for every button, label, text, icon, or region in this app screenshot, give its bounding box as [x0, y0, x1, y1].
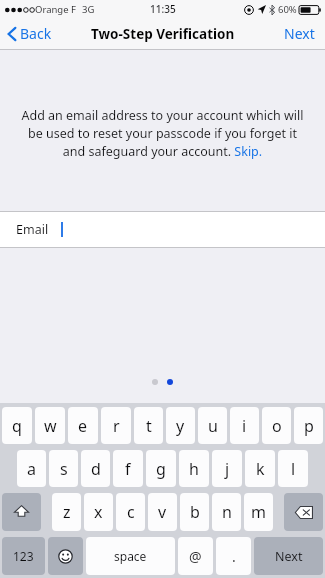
button[interactable]: Back [0, 20, 60, 47]
button[interactable]: y [166, 407, 195, 444]
button[interactable]: d [81, 450, 110, 487]
button[interactable]: . [216, 537, 251, 575]
staticText: e [78, 415, 88, 437]
button[interactable]: a [17, 450, 46, 487]
button[interactable]: x [84, 493, 113, 531]
button[interactable]: v [148, 493, 177, 531]
staticText: r [113, 415, 120, 437]
button[interactable]: g [146, 450, 176, 487]
button[interactable]: b [180, 493, 209, 531]
staticText: q [12, 415, 22, 437]
staticText: j [225, 458, 230, 480]
staticText: Orange F [35, 3, 76, 16]
staticText: u [208, 415, 218, 437]
button[interactable]: f [113, 450, 143, 487]
staticText: Add an email address to your account whi… [18, 107, 307, 160]
staticText: t [146, 415, 152, 437]
button[interactable]: Next [254, 537, 323, 575]
staticText: Two-Step Verification [91, 25, 235, 43]
staticText: a [27, 458, 36, 480]
staticText: b [190, 501, 200, 523]
staticText: w [44, 415, 57, 437]
staticText: f [125, 458, 131, 480]
button[interactable]: r [101, 407, 131, 444]
button[interactable]: Emoji [48, 537, 83, 575]
button[interactable]: t [134, 407, 163, 444]
button[interactable]: u [198, 407, 227, 444]
staticText: k [256, 458, 265, 480]
staticText: 11:35 [150, 2, 176, 16]
button[interactable]: Shift [2, 493, 41, 531]
button[interactable]: i [230, 407, 259, 444]
button[interactable]: s [49, 450, 78, 487]
staticText: n [222, 501, 232, 523]
staticText: 60% [278, 3, 297, 16]
button[interactable]: o [262, 407, 291, 444]
button[interactable]: m [244, 493, 273, 531]
staticText: z [63, 501, 71, 523]
staticText: c [127, 501, 135, 523]
staticText: x [94, 501, 103, 523]
button[interactable]: h [179, 450, 209, 487]
staticText: y [176, 415, 185, 437]
button[interactable]: n [212, 493, 241, 531]
staticText: p [304, 415, 314, 437]
staticText: Email [16, 221, 49, 238]
staticText: m [251, 501, 266, 523]
staticText: Next [284, 24, 315, 43]
button[interactable]: l [278, 450, 308, 487]
staticText: @ [189, 547, 202, 566]
staticText: o [272, 415, 282, 437]
button[interactable]: c [116, 493, 145, 531]
button[interactable]: Delete [284, 493, 323, 531]
staticText: s [60, 458, 68, 480]
button[interactable]: w [35, 407, 65, 444]
button[interactable]: z [52, 493, 81, 531]
staticText: i [242, 415, 247, 437]
staticText: d [91, 458, 101, 480]
button[interactable]: j [212, 450, 242, 487]
button[interactable]: p [294, 407, 323, 444]
button[interactable]: Email [0, 212, 325, 247]
staticText: h [189, 458, 199, 480]
button[interactable]: 123 [2, 537, 45, 575]
staticText: 3G [82, 3, 95, 16]
button[interactable]: space [86, 537, 175, 575]
staticText: Next [275, 548, 303, 565]
button[interactable]: q [2, 407, 32, 444]
staticText: v [158, 501, 167, 523]
button[interactable]: k [245, 450, 275, 487]
staticText: 123 [13, 548, 34, 564]
button[interactable]: Next [274, 20, 325, 47]
staticText: Back [20, 24, 52, 43]
button[interactable]: @ [178, 537, 213, 575]
button[interactable]: e [68, 407, 98, 444]
staticText: l [291, 458, 296, 480]
staticText: . [232, 547, 236, 566]
staticText: space [114, 548, 147, 564]
staticText: g [156, 458, 166, 480]
